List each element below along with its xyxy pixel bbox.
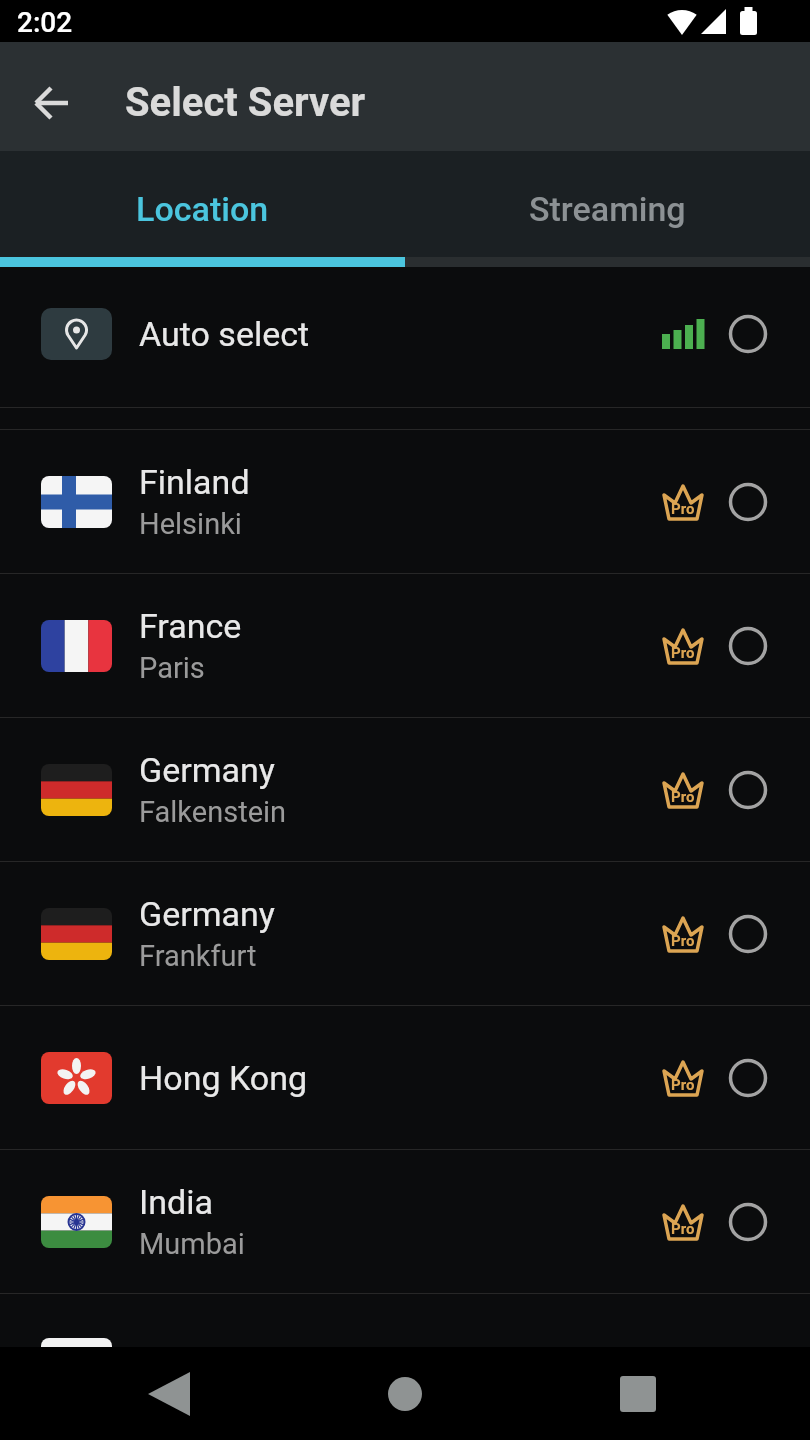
staticText: Select Server: [125, 79, 366, 126]
staticText: Streaming: [529, 189, 686, 229]
staticText: Frankfurt: [139, 939, 257, 973]
button[interactable]: Germany: [0, 862, 810, 1005]
staticText: 2:02: [17, 6, 73, 39]
staticText: Pro: [671, 1076, 695, 1094]
button[interactable]: Germany: [0, 718, 810, 861]
button[interactable]: France: [0, 574, 810, 717]
staticText: Pro: [671, 500, 695, 518]
staticText: India: [139, 1182, 213, 1222]
staticText: Finland: [139, 462, 250, 502]
button[interactable]: India: [0, 1150, 810, 1293]
staticText: Pro: [671, 788, 695, 806]
staticText: Germany: [139, 894, 275, 934]
button[interactable]: Streaming: [405, 151, 810, 257]
staticText: Paris: [139, 651, 205, 685]
staticText: Pro: [671, 644, 695, 662]
button[interactable]: [616, 1372, 660, 1416]
staticText: Mumbai: [139, 1227, 245, 1261]
staticText: Helsinki: [139, 507, 242, 541]
staticText: France: [139, 606, 242, 646]
button[interactable]: Auto select: [0, 264, 810, 404]
button[interactable]: Hong Kong: [0, 1006, 810, 1149]
staticText: Pro: [671, 932, 695, 950]
staticText: Pro: [671, 1220, 695, 1238]
button[interactable]: Location: [0, 151, 405, 257]
button[interactable]: [148, 1372, 192, 1416]
staticText: Falkenstein: [139, 795, 287, 829]
staticText: Hong Kong: [139, 1058, 308, 1098]
button[interactable]: [30, 81, 74, 125]
staticText: Germany: [139, 750, 275, 790]
staticText: Auto select: [139, 314, 310, 354]
button[interactable]: Finland: [0, 430, 810, 573]
button[interactable]: [383, 1372, 427, 1416]
staticText: Location: [136, 189, 269, 229]
